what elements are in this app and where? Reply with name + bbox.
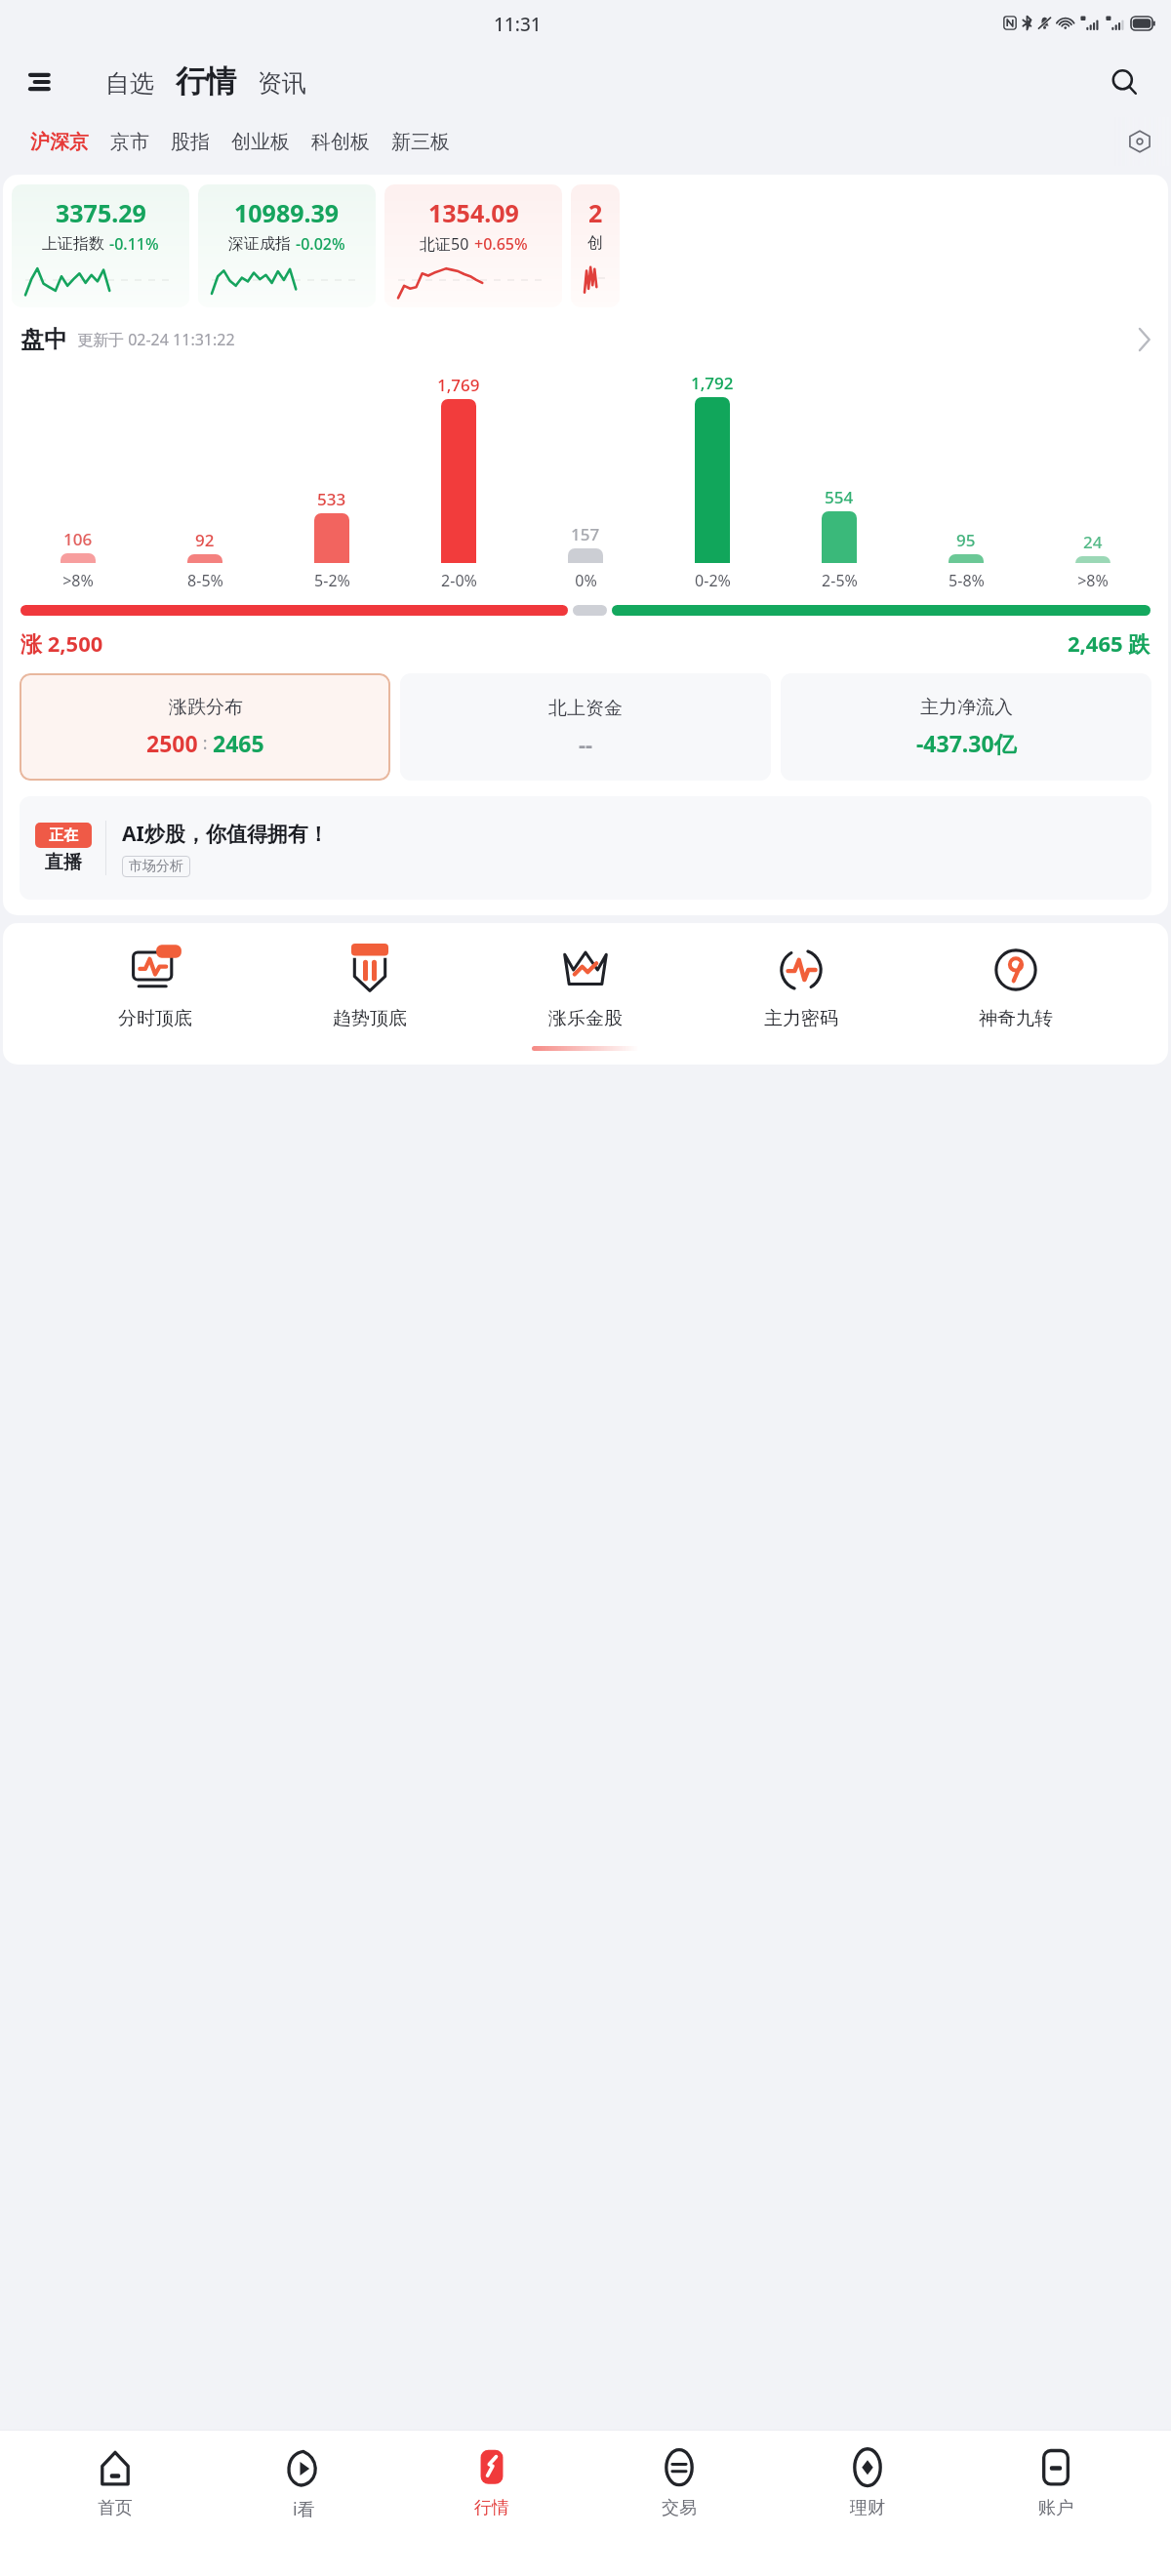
- staticText: 2465: [213, 728, 264, 758]
- button[interactable]: 行情: [170, 60, 242, 102]
- button[interactable]: 创业板: [221, 124, 301, 160]
- staticText: -0.02%: [296, 233, 345, 255]
- button[interactable]: 2: [571, 184, 620, 307]
- staticText: 95: [956, 529, 976, 551]
- staticText: 深证成指: [228, 234, 291, 254]
- button[interactable]: 分时顶底: [92, 943, 219, 1030]
- staticText: -437.30亿: [916, 728, 1017, 758]
- staticText: 更新于 02-24 11:31:22: [77, 329, 235, 350]
- button[interactable]: 行情: [419, 2447, 565, 2519]
- staticText: 涨乐金股: [548, 1007, 623, 1030]
- staticText: 涨 2,500: [20, 628, 103, 658]
- staticText: 1,769: [437, 374, 480, 396]
- staticText: 行情: [474, 2497, 509, 2519]
- button[interactable]: Menu: [23, 62, 62, 101]
- staticText: +0.65%: [474, 233, 528, 255]
- staticText: 股指: [171, 130, 210, 154]
- staticText: 正在: [49, 826, 78, 845]
- button[interactable]: 北上资金: [400, 673, 771, 781]
- staticText: 10989.39: [234, 196, 340, 229]
- staticText: 新三板: [391, 130, 450, 154]
- staticText: 创: [587, 233, 603, 253]
- staticText: 市场分析: [129, 858, 183, 875]
- button[interactable]: 首页: [42, 2447, 188, 2519]
- staticText: 157: [571, 523, 600, 545]
- staticText: 科创板: [311, 130, 370, 154]
- button[interactable]: 趋势顶底: [306, 943, 433, 1030]
- staticText: 上证指数: [42, 234, 104, 254]
- staticText: AI炒股，你值得拥有！: [122, 820, 329, 848]
- staticText: 主力密码: [764, 1007, 838, 1030]
- staticText: 账户: [1038, 2497, 1073, 2519]
- button[interactable]: 10989.39: [198, 184, 376, 307]
- staticText: 创业板: [231, 130, 290, 154]
- staticText: 自选: [105, 68, 154, 99]
- button[interactable]: 主力密码: [738, 943, 865, 1030]
- staticText: 趋势顶底: [333, 1007, 407, 1030]
- staticText: 神奇九转: [979, 1007, 1053, 1030]
- button[interactable]: i看: [230, 2447, 377, 2521]
- staticText: 2-5%: [822, 570, 858, 591]
- staticText: 直播: [45, 851, 82, 874]
- staticText: -0.11%: [109, 233, 159, 255]
- button[interactable]: 正在: [20, 796, 1151, 900]
- staticText: 资讯: [258, 68, 306, 99]
- staticText: 首页: [98, 2497, 133, 2519]
- staticText: 8-5%: [187, 570, 223, 591]
- staticText: 0%: [575, 570, 597, 591]
- staticText: 北上资金: [548, 697, 623, 720]
- button[interactable]: 理财: [794, 2447, 941, 2519]
- staticText: i看: [293, 2497, 315, 2521]
- staticText: 主力净流入: [920, 696, 1013, 719]
- staticText: 11:31: [494, 12, 542, 37]
- staticText: >8%: [62, 570, 94, 591]
- button[interactable]: 1354.09: [384, 184, 562, 307]
- button[interactable]: 京市: [100, 124, 160, 160]
- button[interactable]: 盘中: [3, 307, 1168, 372]
- button[interactable]: 自选: [96, 64, 164, 102]
- button[interactable]: 沪深京: [20, 124, 100, 160]
- staticText: 92: [195, 529, 215, 551]
- staticText: 2-0%: [441, 570, 477, 591]
- button[interactable]: 主力净流入: [781, 673, 1151, 781]
- button[interactable]: 神奇九转: [952, 943, 1079, 1030]
- staticText: 盘中: [20, 325, 67, 354]
- staticText: 5-2%: [314, 570, 350, 591]
- staticText: 0-2%: [695, 570, 731, 591]
- staticText: 1354.09: [428, 196, 519, 229]
- staticText: --: [579, 729, 593, 758]
- button[interactable]: Search: [1103, 60, 1146, 103]
- staticText: 3375.29: [56, 196, 146, 229]
- staticText: 2500: [146, 728, 198, 758]
- button[interactable]: 资讯: [250, 64, 314, 102]
- staticText: 涨跌分布: [169, 696, 243, 719]
- button[interactable]: 股指: [160, 124, 221, 160]
- staticText: 533: [317, 488, 346, 510]
- staticText: 北证50: [420, 233, 469, 255]
- staticText: 2: [588, 196, 603, 229]
- staticText: 行情: [176, 62, 236, 101]
- staticText: 554: [825, 486, 854, 508]
- button[interactable]: 涨乐金股: [522, 943, 649, 1030]
- staticText: 交易: [662, 2497, 697, 2519]
- staticText: 1,792: [691, 372, 734, 394]
- staticText: 理财: [850, 2497, 885, 2519]
- button[interactable]: 涨跌分布: [20, 673, 390, 781]
- staticText: 京市: [110, 130, 149, 154]
- staticText: 24: [1083, 531, 1103, 553]
- button[interactable]: Settings: [1122, 124, 1157, 159]
- button[interactable]: 新三板: [381, 124, 461, 160]
- staticText: >8%: [1077, 570, 1109, 591]
- staticText: :: [198, 731, 213, 755]
- staticText: 106: [63, 528, 93, 550]
- button[interactable]: 交易: [606, 2447, 752, 2519]
- staticText: 5-8%: [949, 570, 985, 591]
- staticText: 分时顶底: [118, 1007, 192, 1030]
- button[interactable]: 科创板: [301, 124, 381, 160]
- staticText: 2,465 跌: [1068, 628, 1151, 658]
- button[interactable]: 3375.29: [12, 184, 189, 307]
- button[interactable]: 账户: [983, 2447, 1129, 2519]
- staticText: 沪深京: [30, 130, 89, 154]
